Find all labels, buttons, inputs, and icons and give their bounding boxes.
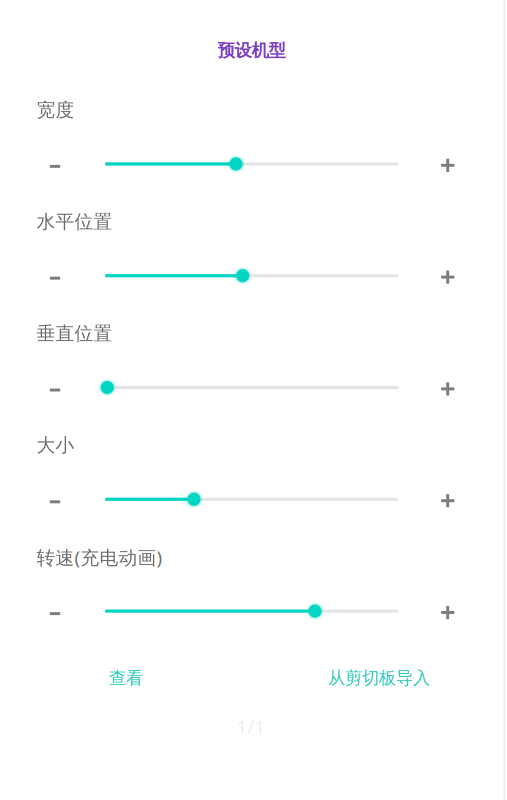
staticText: 大小 (36, 434, 74, 457)
button[interactable]: 大小 (96, 484, 407, 514)
button[interactable]: Increase 转速(充电动画) (425, 589, 471, 635)
button[interactable]: Increase 水平位置 (425, 254, 471, 300)
button[interactable]: Decrease 大小 (32, 479, 78, 525)
staticText: 1/1 (236, 714, 265, 739)
staticText: 查看 (109, 667, 143, 689)
staticText: 水平位置 (36, 210, 112, 233)
button[interactable]: Increase 大小 (425, 478, 471, 524)
staticText: 从剪切板导入 (328, 667, 430, 689)
button[interactable]: 垂直位置 (96, 372, 407, 402)
button[interactable]: Increase 宽度 (425, 142, 471, 188)
button[interactable]: 转速(充电动画) (96, 596, 407, 626)
button[interactable]: 从剪切板导入 (314, 659, 444, 697)
button[interactable]: Increase 垂直位置 (425, 366, 471, 412)
button[interactable]: 宽度 (96, 149, 407, 179)
button[interactable]: Decrease 水平位置 (32, 255, 78, 301)
button[interactable]: Decrease 转速(充电动画) (32, 591, 78, 637)
button[interactable]: 查看 (95, 659, 157, 697)
button[interactable]: 水平位置 (96, 261, 407, 291)
staticText: 宽度 (36, 98, 74, 121)
staticText: 垂直位置 (36, 322, 112, 345)
staticText: 转速(充电动画) (36, 545, 162, 570)
button[interactable]: Decrease 垂直位置 (32, 367, 78, 413)
staticText: 预设机型 (217, 40, 285, 61)
button[interactable]: Decrease 宽度 (32, 143, 78, 189)
